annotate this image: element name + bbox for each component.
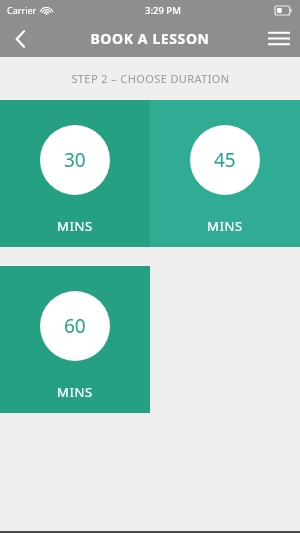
staticText: Carrier <box>7 4 37 16</box>
button[interactable]: Back <box>0 20 40 57</box>
button[interactable]: Menu <box>258 20 300 57</box>
staticText: 60 <box>64 313 86 339</box>
staticText: MINS <box>57 217 93 235</box>
button[interactable]: 45 <box>150 100 300 247</box>
staticText: 45 <box>214 147 236 173</box>
staticText: 30 <box>64 147 86 173</box>
staticText: BOOK A LESSON <box>90 29 210 48</box>
staticText: MINS <box>207 217 243 235</box>
staticText: MINS <box>57 383 93 401</box>
staticText: STEP 2 – CHOOSE DURATION <box>71 71 230 86</box>
button[interactable]: 30 <box>0 100 150 247</box>
button[interactable]: 60 <box>0 266 150 413</box>
staticText: 3:29 PM <box>145 4 181 17</box>
